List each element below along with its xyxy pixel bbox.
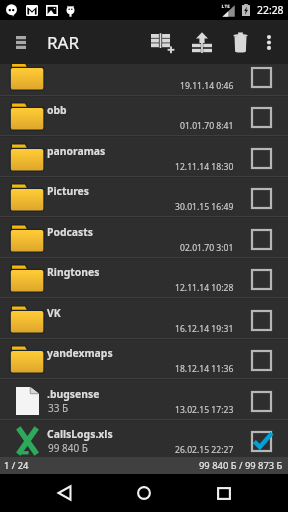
staticText: 99 840 Б / 99 873 Б bbox=[199, 459, 283, 472]
button[interactable]: 19.11.14 0:46 bbox=[0, 64, 288, 97]
button[interactable]: Select bbox=[243, 140, 279, 176]
staticText: RAR bbox=[47, 31, 80, 54]
staticText: Pictures bbox=[47, 184, 90, 198]
staticText: Ringtones bbox=[47, 265, 100, 279]
staticText: panoramas bbox=[47, 144, 106, 158]
button[interactable]: Recents bbox=[204, 474, 244, 512]
button[interactable]: Extract bbox=[184, 24, 220, 60]
button[interactable]: Add to archive bbox=[139, 20, 175, 64]
staticText: 26.02.15 22:27 bbox=[175, 444, 234, 456]
button[interactable]: Select bbox=[243, 423, 279, 457]
staticText: 99 840 Б bbox=[48, 441, 88, 455]
button[interactable]: Select bbox=[243, 99, 279, 135]
button[interactable]: .bugsense bbox=[0, 380, 288, 421]
staticText: VK bbox=[47, 306, 61, 320]
staticText: 19.11.14 0:46 bbox=[180, 80, 234, 92]
button[interactable]: Back bbox=[44, 474, 84, 512]
staticText: 33 Б bbox=[48, 401, 69, 415]
staticText: 12.11.14 18:30 bbox=[175, 161, 234, 173]
button[interactable]: Select bbox=[243, 221, 279, 257]
button[interactable]: Ringtones bbox=[0, 258, 288, 299]
staticText: 16.12.14 19:31 bbox=[175, 323, 234, 335]
staticText: obb bbox=[47, 103, 67, 117]
button[interactable]: Select bbox=[243, 383, 279, 419]
button[interactable]: obb bbox=[0, 96, 288, 137]
staticText: 1 / 24 bbox=[4, 459, 29, 472]
button[interactable]: Podcasts bbox=[0, 218, 288, 259]
button[interactable]: Select bbox=[243, 302, 279, 338]
staticText: 22:28 bbox=[257, 3, 284, 17]
staticText: 12.11.14 10:28 bbox=[175, 282, 234, 294]
button[interactable]: Home bbox=[124, 474, 164, 512]
staticText: 01.01.70 8:41 bbox=[180, 120, 234, 132]
staticText: CallsLogs.xls bbox=[47, 427, 113, 441]
staticText: Podcasts bbox=[47, 225, 94, 239]
staticText: .bugsense bbox=[47, 387, 100, 401]
button[interactable]: Select bbox=[243, 180, 279, 216]
button[interactable]: Delete bbox=[222, 24, 258, 60]
staticText: 02.01.70 3:01 bbox=[180, 242, 234, 254]
button[interactable]: panoramas bbox=[0, 137, 288, 178]
button[interactable]: Menu bbox=[4, 25, 38, 59]
button[interactable]: Select bbox=[243, 342, 279, 378]
staticText: 13.02.15 17:23 bbox=[175, 404, 234, 416]
button[interactable]: More options bbox=[254, 27, 284, 57]
button[interactable]: VK bbox=[0, 299, 288, 340]
staticText: 18.12.14 11:36 bbox=[175, 363, 234, 375]
staticText: yandexmaps bbox=[47, 346, 113, 360]
button[interactable]: yandexmaps bbox=[0, 339, 288, 380]
button[interactable]: Select bbox=[243, 64, 279, 95]
staticText: 30.01.15 16:49 bbox=[175, 201, 234, 213]
button[interactable]: Select bbox=[243, 261, 279, 297]
button[interactable]: CallsLogs.xls bbox=[0, 420, 288, 457]
button[interactable]: Pictures bbox=[0, 177, 288, 218]
